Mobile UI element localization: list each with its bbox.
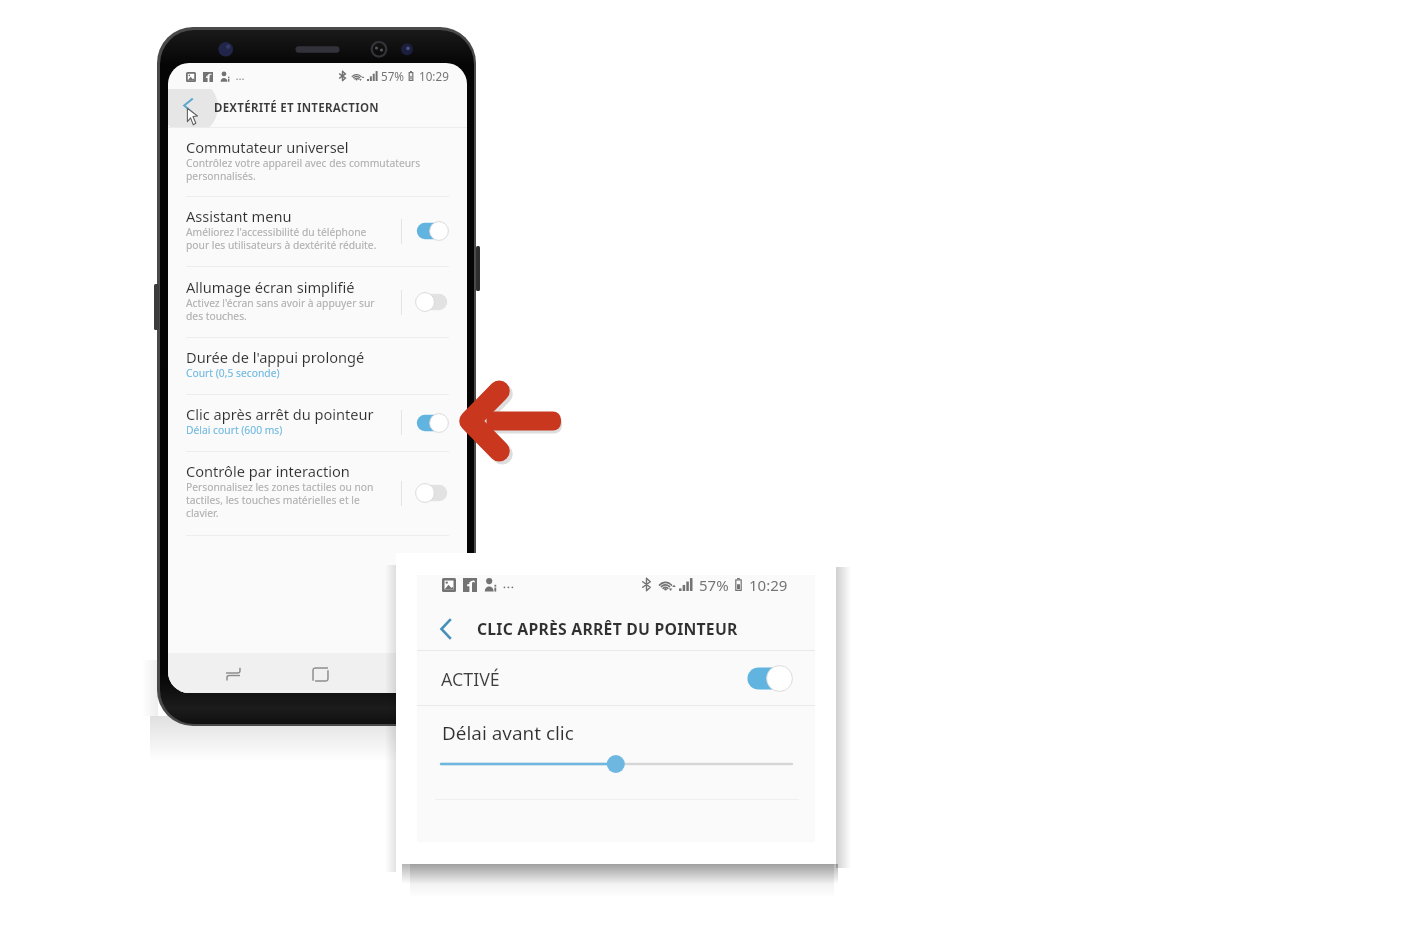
button[interactable]: Recents [208,653,258,693]
staticText: Contrôle par interaction [186,461,350,481]
button[interactable]: On [406,394,458,451]
button[interactable]: Back [382,653,432,693]
staticText: 57% [381,68,405,84]
staticText: des touches. [186,309,247,323]
button[interactable]: Back [417,608,815,650]
staticText: Contrôlez votre appareil avec des commut… [186,156,421,170]
staticText: Commutateur universel [186,137,349,157]
staticText: 10:29 [749,575,788,593]
button[interactable]: Off [406,267,458,337]
button[interactable]: On [406,196,458,266]
staticText: ACTIVÉ [441,667,500,691]
button[interactable]: Durée de l'appui prolongé [168,337,467,394]
staticText: clavier. [186,506,219,520]
staticText: Améliorez l'accessibilité du téléphone [186,225,367,239]
button[interactable]: Commutateur universel [168,128,467,196]
staticText: 10:29 [419,68,449,84]
button[interactable]: ACTIVÉ [417,651,815,705]
button[interactable] [441,754,792,774]
button[interactable]: Allumage écran simplifié [168,267,467,337]
button[interactable]: Assistant menu [168,196,467,266]
staticText: personnalisés. [186,169,256,183]
button[interactable]: Back [417,608,471,650]
staticText: Assistant menu [186,206,292,226]
staticText: pour les utilisateurs à dextérité réduit… [186,238,377,252]
staticText: 57% [699,575,729,593]
other: Pointer arrow [459,382,561,460]
button[interactable]: Off [406,451,458,535]
staticText: Personnalisez les zones tactiles ou non [186,480,374,494]
staticText: Durée de l'appui prolongé [186,347,365,367]
staticText: Délai court (600 ms) [186,423,283,437]
staticText: Court (0,5 seconde) [186,366,280,380]
staticText: Clic après arrêt du pointeur [186,404,374,424]
button[interactable]: Contrôle par interaction [168,451,467,535]
staticText: Délai avant clic [442,720,574,746]
staticText: DEXTÉRITÉ ET INTERACTION [214,100,379,116]
staticText: Allumage écran simplifié [186,277,355,297]
button[interactable]: Back [168,89,208,127]
staticText: Activez l'écran sans avoir à appuyer sur [186,296,375,310]
button[interactable]: Clic après arrêt du pointeur [168,394,467,451]
staticText: CLIC APRÈS ARRÊT DU POINTEUR [477,618,738,640]
button[interactable]: Home [295,653,345,693]
staticText: tactiles, les touches matérielles et le [186,493,360,507]
button[interactable]: Activated [745,665,793,692]
